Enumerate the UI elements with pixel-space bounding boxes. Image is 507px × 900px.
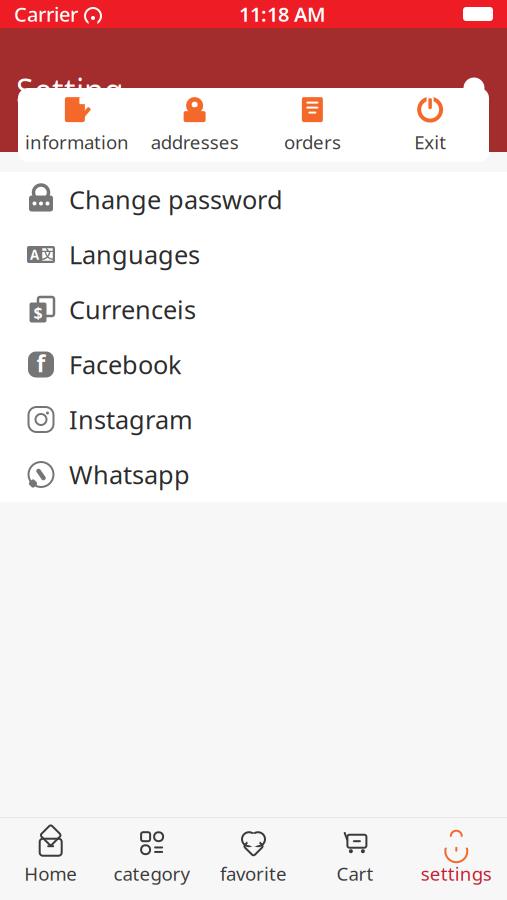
staticText: category <box>114 861 191 886</box>
button[interactable]: Exit <box>371 84 489 166</box>
staticText: Languages <box>69 238 200 271</box>
button[interactable]: Instagram <box>0 392 507 447</box>
staticText: Cart <box>336 861 373 886</box>
button[interactable]: information <box>18 84 136 166</box>
staticText: Instagram <box>69 403 193 436</box>
staticText: $ <box>33 302 42 323</box>
staticText: f <box>36 348 45 378</box>
staticText: orders <box>284 130 341 154</box>
button[interactable]: $ <box>0 282 507 337</box>
staticText: Whatsapp <box>69 458 190 491</box>
button[interactable]: Notifications <box>457 73 491 107</box>
button[interactable]: addresses <box>136 84 254 166</box>
staticText: addresses <box>151 130 239 154</box>
staticText: 11:18 AM <box>239 1 326 27</box>
staticText: settings <box>421 861 492 886</box>
button[interactable]: settings <box>406 830 507 886</box>
button[interactable]: Cart <box>304 830 406 886</box>
staticText: 文 <box>41 247 53 262</box>
button[interactable]: category <box>101 830 203 886</box>
button[interactable]: Whatsapp <box>0 447 507 502</box>
button[interactable]: A <box>0 227 507 282</box>
staticText: information <box>25 130 129 154</box>
button[interactable]: orders <box>253 84 371 166</box>
staticText: Home <box>24 861 77 886</box>
button[interactable]: f <box>0 337 507 392</box>
button[interactable]: Change password <box>0 172 507 227</box>
staticText: Exit <box>414 130 446 154</box>
staticText: Currenceis <box>69 293 196 326</box>
staticText: Setting <box>16 69 124 111</box>
staticText: A <box>30 246 39 263</box>
staticText: Change password <box>69 183 283 216</box>
button[interactable]: Home <box>0 830 101 886</box>
button[interactable]: favorite <box>203 830 304 886</box>
staticText: Carrier <box>14 1 78 27</box>
staticText: Facebook <box>69 348 182 381</box>
staticText: favorite <box>220 861 287 886</box>
